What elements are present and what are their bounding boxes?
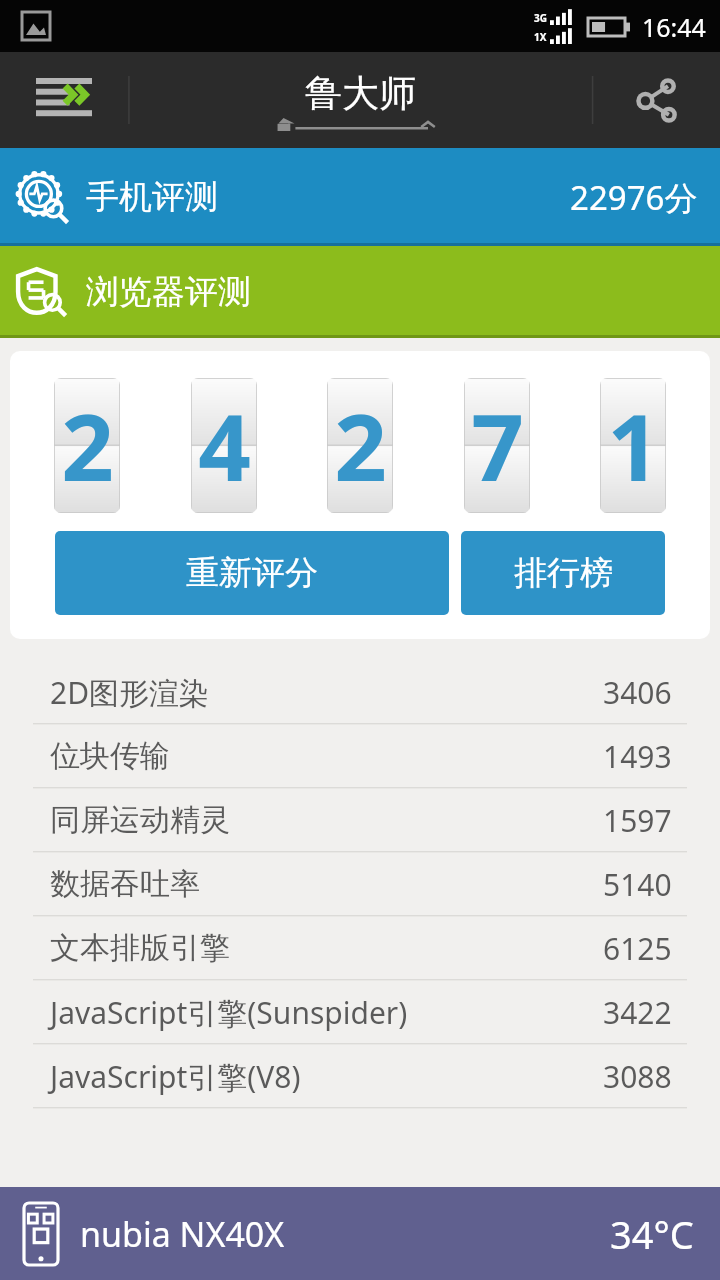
button[interactable]: 文本排版引擎: [0, 916, 720, 980]
staticText: 1493: [603, 736, 672, 777]
staticText: 2: [334, 383, 387, 508]
button[interactable]: 重新评分: [55, 531, 449, 615]
staticText: 手机评测: [86, 176, 218, 218]
staticText: 重新评分: [186, 552, 318, 594]
staticText: 4: [198, 383, 251, 508]
button[interactable]: JavaScript引擎(Sunspider): [0, 980, 720, 1044]
staticText: 1: [607, 383, 660, 508]
staticText: 7: [471, 383, 524, 508]
staticText: 16:44: [642, 10, 706, 44]
staticText: 6125: [603, 928, 672, 969]
staticText: 22976分: [570, 175, 698, 220]
button[interactable]: nubia NX40X: [0, 1187, 720, 1280]
staticText: JavaScript引擎(V8): [50, 1056, 301, 1097]
staticText: 位块传输: [50, 737, 170, 775]
staticText: nubia NX40X: [80, 1211, 285, 1257]
staticText: 1597: [603, 800, 672, 841]
staticText: 3406: [603, 672, 672, 713]
button[interactable]: JavaScript引擎(V8): [0, 1044, 720, 1108]
staticText: 排行榜: [514, 552, 613, 594]
staticText: 3G: [534, 11, 547, 25]
staticText: 同屏运动精灵: [50, 801, 230, 839]
button[interactable]: 浏览器评测: [0, 246, 720, 338]
button[interactable]: 排行榜: [461, 531, 665, 615]
staticText: 34°C: [610, 1208, 694, 1260]
staticText: 1X: [534, 30, 547, 44]
staticText: 2: [61, 383, 114, 508]
staticText: JavaScript引擎(Sunspider): [50, 992, 408, 1033]
staticText: 文本排版引擎: [50, 929, 230, 967]
staticText: 2D图形渲染: [50, 672, 210, 713]
button[interactable]: 数据吞吐率: [0, 852, 720, 916]
button[interactable]: 位块传输: [0, 724, 720, 788]
staticText: 数据吞吐率: [50, 865, 200, 903]
staticText: 3422: [603, 992, 672, 1033]
staticText: 3088: [603, 1056, 672, 1097]
button[interactable]: 2D图形渲染: [0, 660, 720, 724]
button[interactable]: Menu: [0, 52, 128, 148]
button[interactable]: 手机评测: [0, 148, 720, 246]
button[interactable]: Share: [592, 52, 720, 148]
button[interactable]: 同屏运动精灵: [0, 788, 720, 852]
staticText: 鲁大师: [305, 70, 416, 117]
staticText: 浏览器评测: [86, 271, 251, 313]
staticText: 5140: [603, 864, 672, 905]
